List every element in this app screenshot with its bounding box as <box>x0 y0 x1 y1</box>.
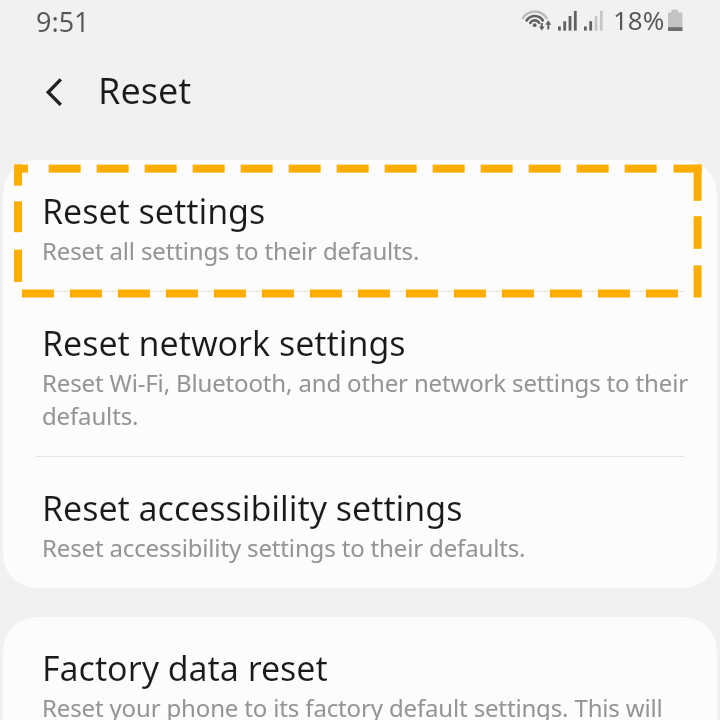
staticText: Reset <box>98 66 192 115</box>
staticText: Reset your phone to its factory default … <box>42 691 717 720</box>
staticText: Reset accessibility settings to their de… <box>42 531 526 564</box>
staticText: Reset all settings to their defaults. <box>42 234 420 267</box>
button[interactable]: Reset network settings <box>3 292 717 456</box>
staticText: Reset network settings <box>42 320 406 366</box>
staticText: Reset accessibility settings <box>42 485 463 531</box>
staticText: Reset Wi-Fi, Bluetooth, and other networ… <box>42 366 717 432</box>
button[interactable]: Reset accessibility settings <box>3 457 717 588</box>
button[interactable]: Factory data reset <box>3 617 717 720</box>
staticText: 18% <box>613 2 665 37</box>
button[interactable]: Reset settings <box>3 160 717 291</box>
staticText: Reset settings <box>42 188 266 234</box>
staticText: Factory data reset <box>42 645 328 691</box>
staticText: 9:51 <box>36 3 90 40</box>
button[interactable]: Back <box>26 69 78 121</box>
